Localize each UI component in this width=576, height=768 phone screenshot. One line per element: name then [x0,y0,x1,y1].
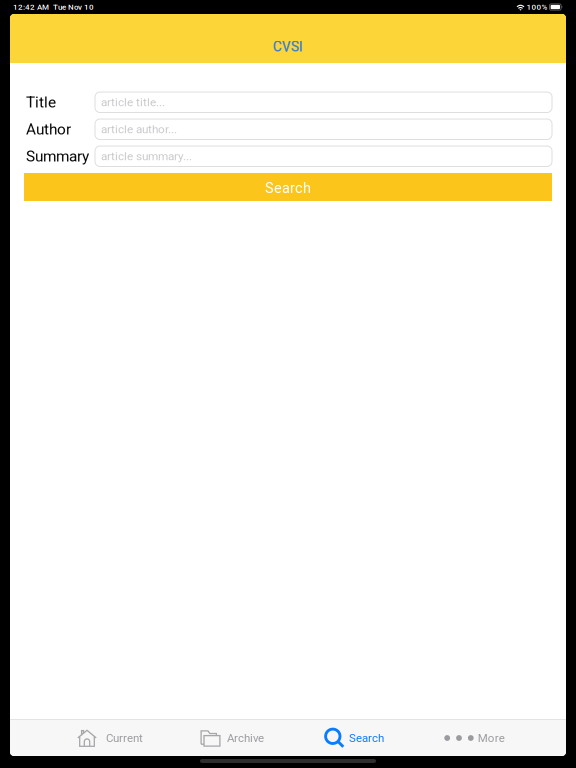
staticText: Summary [26,147,89,165]
staticText: article summary... [101,149,192,163]
button[interactable]: article author... [95,119,552,139]
staticText: Archive [227,731,264,745]
button[interactable]: article title... [95,92,552,112]
staticText: CVSI [273,39,303,55]
button[interactable]: Current [49,720,171,756]
staticText: Search [349,731,384,745]
staticText: Search [265,180,311,196]
staticText: 12:42 AM [13,2,49,12]
button[interactable]: More [415,720,537,756]
staticText: Current [106,731,143,745]
staticText: 100% [524,2,549,12]
button[interactable]: Search [24,173,552,201]
staticText: Tue Nov 10 [49,2,94,12]
staticText: article author... [101,122,177,136]
button[interactable]: Archive [171,720,293,756]
button[interactable]: article summary... [95,146,552,166]
button[interactable]: Search [293,720,415,756]
staticText: Author [26,120,71,138]
staticText: Title [26,93,56,111]
staticText: More [478,731,505,745]
staticText: article title... [101,95,165,109]
